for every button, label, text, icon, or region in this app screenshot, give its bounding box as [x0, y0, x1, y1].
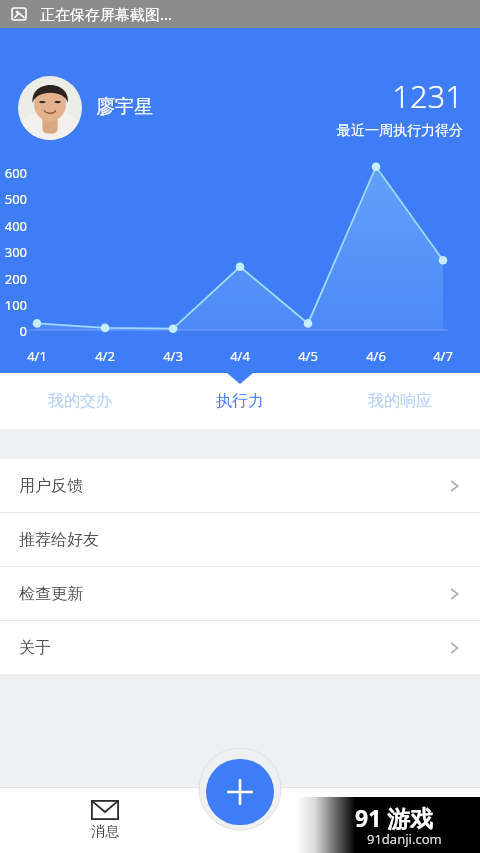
button[interactable]: 用户反馈 [0, 459, 480, 512]
staticText: 消息 [91, 823, 119, 841]
staticText: 200 [0, 270, 27, 288]
staticText: 关于 [19, 638, 51, 658]
staticText: 廖宇星 [96, 95, 153, 119]
staticText: 500 [0, 190, 27, 208]
button[interactable]: Add [206, 759, 274, 825]
staticText: 300 [0, 243, 27, 261]
staticText: 推荐给好友 [19, 530, 99, 550]
staticText: 4/5 [291, 347, 325, 365]
staticText: 检查更新 [19, 584, 83, 604]
staticText: 我的交办 [48, 391, 112, 411]
button[interactable]: 消息 [78, 800, 132, 841]
staticText: 正在保存屏幕截图... [40, 4, 173, 24]
staticText: 400 [0, 217, 27, 235]
button[interactable]: 检查更新 [0, 567, 480, 620]
staticText: 91 游戏 [355, 802, 434, 833]
button[interactable]: 我的交办 [0, 373, 160, 429]
staticText: 600 [0, 164, 27, 182]
staticText: 我的响应 [368, 391, 432, 411]
staticText: 4/1 [20, 347, 54, 365]
staticText: 4/7 [426, 347, 460, 365]
button[interactable]: 执行力 [160, 373, 320, 429]
staticText: 4/4 [223, 347, 257, 365]
button[interactable]: 推荐给好友 [0, 513, 480, 566]
button[interactable]: 关于 [0, 621, 480, 674]
staticText: 4/6 [359, 347, 393, 365]
staticText: 用户反馈 [19, 476, 83, 496]
staticText: 0 [0, 322, 27, 340]
staticText: 1231 [0, 75, 463, 117]
staticText: 91danji.com [367, 830, 442, 848]
staticText: 执行力 [216, 391, 264, 411]
staticText: 最近一周执行力得分 [0, 122, 463, 140]
staticText: 4/2 [88, 347, 122, 365]
staticText: 4/3 [156, 347, 190, 365]
staticText: 100 [0, 296, 27, 314]
button[interactable]: 我的响应 [320, 373, 480, 429]
